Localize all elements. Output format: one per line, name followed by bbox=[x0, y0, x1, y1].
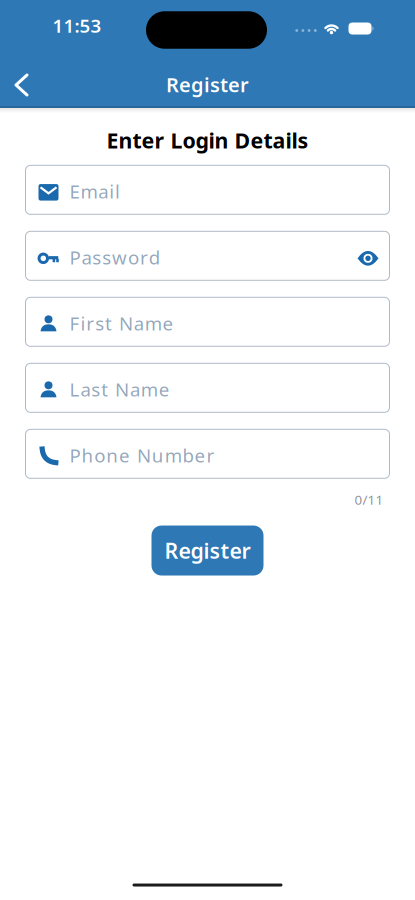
staticText: N bbox=[119, 311, 133, 336]
staticText: r bbox=[86, 311, 94, 336]
staticText: Register bbox=[164, 536, 250, 565]
staticText: i bbox=[80, 311, 85, 336]
staticText: e bbox=[163, 311, 174, 336]
button[interactable]: E bbox=[25, 165, 390, 215]
staticText: w bbox=[112, 245, 127, 270]
staticText: r bbox=[206, 443, 214, 468]
staticText: Register bbox=[166, 71, 249, 98]
staticText: s bbox=[92, 245, 101, 270]
staticText: o bbox=[128, 245, 139, 270]
staticText: t bbox=[101, 377, 108, 402]
staticText: m bbox=[145, 311, 162, 336]
staticText: Enter Login Details bbox=[106, 126, 308, 154]
staticText: E bbox=[69, 179, 79, 204]
staticText: i bbox=[109, 179, 114, 204]
staticText: N bbox=[115, 377, 129, 402]
button[interactable]: Show password bbox=[357, 247, 379, 269]
staticText: e bbox=[194, 443, 205, 468]
staticText: m bbox=[141, 377, 158, 402]
staticText: N bbox=[137, 443, 151, 468]
staticText: P bbox=[69, 245, 80, 270]
staticText: n bbox=[106, 443, 118, 468]
staticText: h bbox=[81, 443, 93, 468]
staticText: r bbox=[140, 245, 148, 270]
staticText: L bbox=[69, 377, 79, 402]
staticText: m bbox=[80, 179, 97, 204]
staticText: P bbox=[69, 443, 80, 468]
staticText: a bbox=[80, 377, 90, 402]
staticText: s bbox=[95, 311, 104, 336]
staticText: u bbox=[152, 443, 164, 468]
button[interactable]: Back bbox=[8, 67, 35, 103]
staticText: b bbox=[183, 443, 194, 468]
staticText: a bbox=[81, 245, 91, 270]
staticText: e bbox=[159, 377, 170, 402]
staticText: o bbox=[94, 443, 105, 468]
staticText: a bbox=[98, 179, 108, 204]
button[interactable]: Register bbox=[151, 525, 263, 575]
button[interactable]: L bbox=[25, 363, 390, 413]
staticText: e bbox=[119, 443, 130, 468]
staticText: t bbox=[105, 311, 112, 336]
staticText: s bbox=[102, 245, 111, 270]
staticText: 11:53 bbox=[52, 13, 101, 38]
staticText: a bbox=[134, 311, 144, 336]
button[interactable]: P bbox=[25, 429, 390, 479]
button[interactable]: P bbox=[25, 231, 390, 281]
button[interactable]: F bbox=[25, 297, 390, 347]
staticText: m bbox=[165, 443, 182, 468]
staticText: 0/11 bbox=[354, 491, 383, 508]
staticText: a bbox=[130, 377, 140, 402]
staticText: F bbox=[69, 311, 79, 336]
staticText: d bbox=[149, 245, 160, 270]
staticText: l bbox=[115, 179, 120, 204]
staticText: s bbox=[91, 377, 100, 402]
